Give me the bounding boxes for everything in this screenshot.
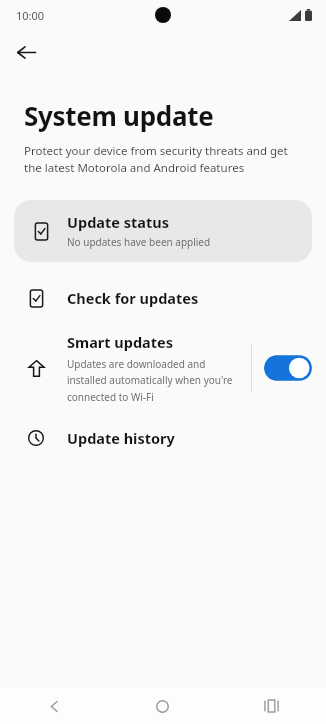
staticText: Updates are downloaded and installed aut… (67, 357, 245, 404)
staticText: Update status (67, 212, 169, 232)
staticText: Protect your device from security threat… (24, 143, 302, 176)
staticText: Check for updates (67, 288, 199, 308)
staticText: System update (24, 98, 214, 133)
button[interactable]: Smart updates toggle (264, 352, 312, 384)
staticText: Update history (67, 428, 175, 448)
button[interactable]: Back (0, 688, 108, 724)
staticText: 10:00 (16, 8, 45, 23)
button[interactable]: Recent apps (217, 688, 326, 724)
button[interactable]: Update status (14, 200, 312, 262)
button[interactable]: Home (108, 688, 217, 724)
staticText: No updates have been applied (67, 235, 211, 249)
staticText: Smart updates (67, 332, 174, 352)
button[interactable]: Update history (0, 418, 326, 458)
button[interactable]: Smart updates (0, 328, 326, 408)
button[interactable]: Check for updates (0, 280, 326, 316)
button[interactable]: Back (8, 34, 44, 70)
